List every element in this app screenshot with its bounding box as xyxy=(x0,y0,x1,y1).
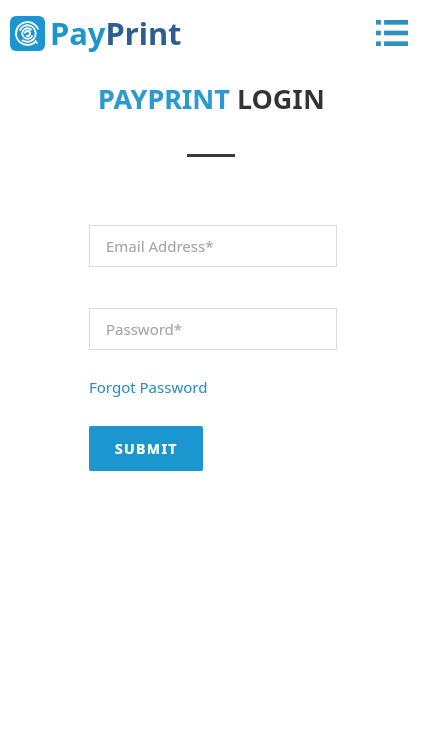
button[interactable]: Forgot Password xyxy=(89,375,208,399)
button[interactable]: Email Address* xyxy=(89,225,337,267)
button[interactable]: SUBMIT xyxy=(89,426,203,471)
staticText: Password* xyxy=(106,319,183,339)
button[interactable]: Menu xyxy=(370,11,414,55)
staticText: PayPrint xyxy=(50,12,182,54)
staticText: SUBMIT xyxy=(115,439,178,458)
button[interactable]: Password* xyxy=(89,308,337,350)
button[interactable]: PayPrint xyxy=(10,12,182,54)
staticText: Forgot Password xyxy=(89,377,208,397)
staticText: PAYPRINT LOGIN xyxy=(98,80,325,117)
staticText: Email Address* xyxy=(106,236,214,256)
